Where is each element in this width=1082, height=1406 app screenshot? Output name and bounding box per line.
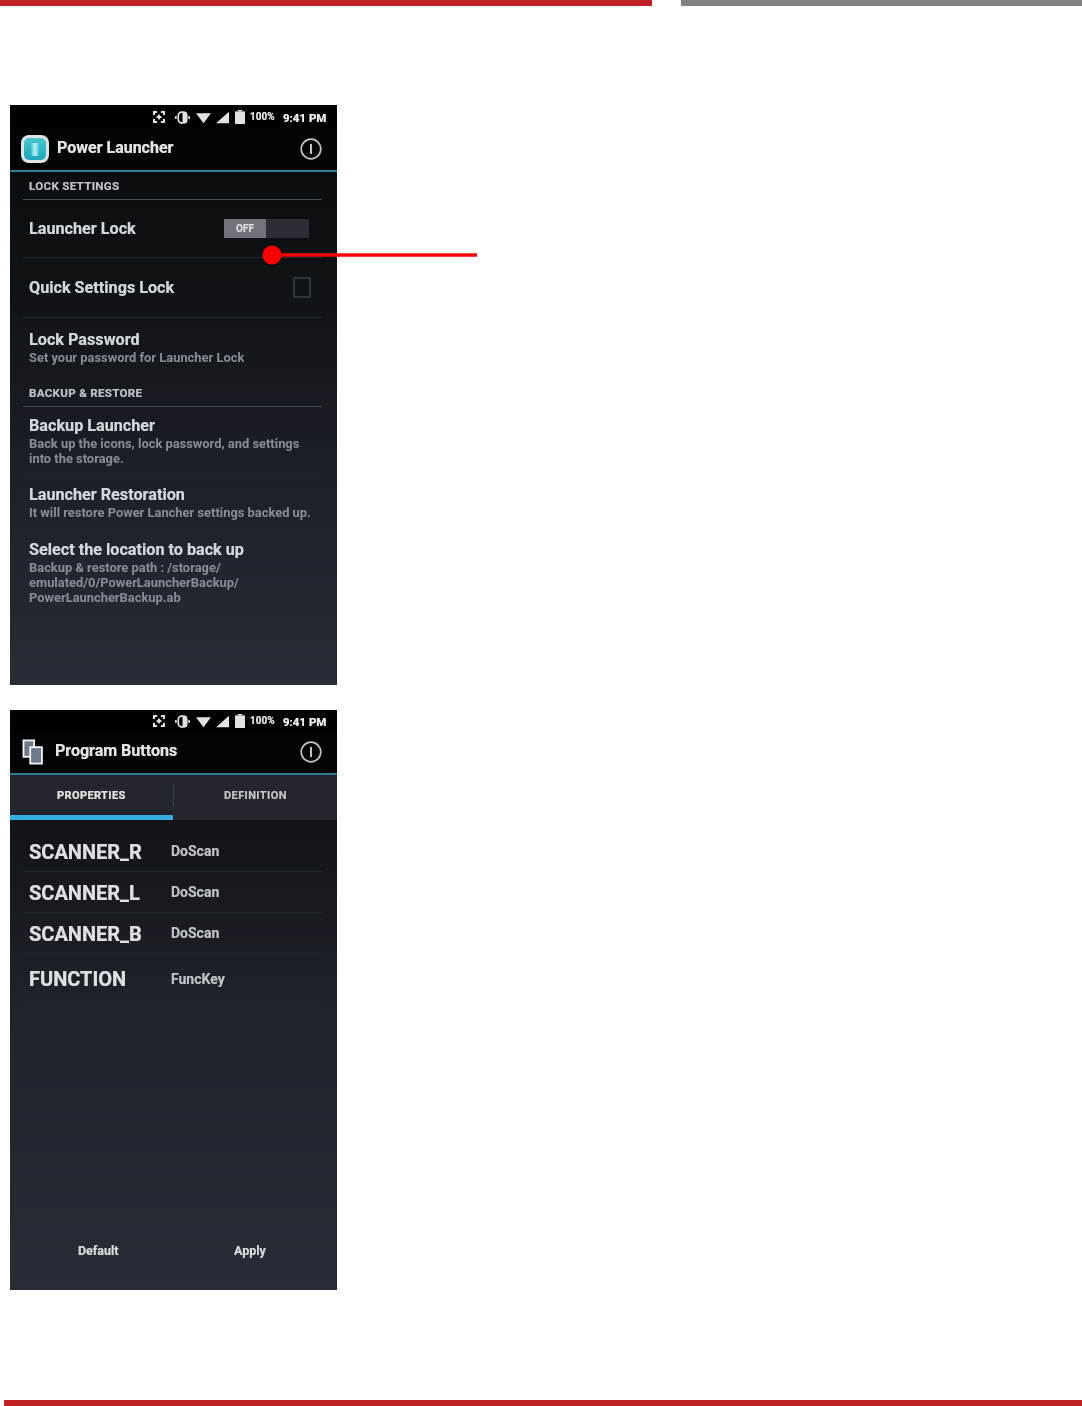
staticText: Back up the icons, lock password, and se… [29, 436, 300, 451]
button[interactable]: Info [300, 741, 322, 763]
button[interactable]: Backup Launcher [10, 407, 337, 473]
staticText: Quick Settings Lock [29, 278, 175, 297]
staticText: 100% [250, 715, 275, 727]
button[interactable]: DEFINITION [173, 775, 337, 815]
button[interactable]: OFF [224, 219, 309, 238]
staticText: into the storage. [29, 451, 124, 466]
button[interactable]: Power Launcher [10, 128, 337, 170]
staticText: DoScan [171, 843, 220, 859]
staticText: Set your password for Launcher Lock [29, 350, 245, 365]
staticText: emulated/0/PowerLauncherBackup/ [29, 575, 239, 590]
staticText: DEFINITION [224, 789, 287, 802]
staticText: DoScan [171, 925, 220, 941]
staticText: 9:41 PM [283, 111, 327, 124]
staticText: LOCK SETTINGS [29, 179, 120, 193]
staticText: SCANNER_R [29, 840, 142, 863]
staticText: Program Buttons [55, 741, 178, 760]
staticText: Backup Launcher [29, 416, 155, 435]
button[interactable]: FUNCTION [10, 954, 337, 1003]
staticText: It will restore Power Lancher settings b… [29, 505, 311, 520]
button[interactable]: Apply [173, 1210, 337, 1290]
staticText: SCANNER_L [29, 881, 140, 904]
staticText: Power Launcher [57, 138, 174, 157]
button[interactable]: SCANNER_L [10, 872, 337, 912]
staticText: DoScan [171, 884, 220, 900]
staticText: Launcher Restoration [29, 485, 185, 504]
staticText: FUNCTION [29, 967, 127, 990]
staticText: OFF [236, 223, 254, 235]
button[interactable]: Default [10, 1210, 173, 1290]
button[interactable]: Launcher Restoration [10, 474, 337, 532]
staticText: Backup & restore path : /storage/ [29, 560, 221, 575]
staticText: BACKUP & RESTORE [29, 386, 143, 400]
staticText: PROPERTIES [57, 789, 126, 802]
button[interactable]: Launcher Lock [10, 200, 337, 257]
button[interactable]: Program Buttons [10, 731, 337, 773]
button[interactable]: Info [300, 138, 322, 160]
button[interactable]: Lock Password [10, 318, 337, 379]
staticText: 100% [250, 111, 275, 123]
button[interactable]: PROPERTIES [10, 775, 173, 815]
button[interactable]: Quick Settings Lock [10, 258, 337, 317]
staticText: 9:41 PM [283, 715, 327, 728]
button[interactable]: Quick Settings Lock checkbox [294, 278, 310, 297]
staticText: PowerLauncherBackup.ab [29, 590, 181, 605]
staticText: Select the location to back up [29, 540, 244, 559]
staticText: FuncKey [171, 971, 225, 987]
button[interactable]: SCANNER_B [10, 913, 337, 953]
button[interactable]: SCANNER_R [10, 831, 337, 871]
button[interactable]: Select the location to back up [10, 533, 337, 613]
staticText: Lock Password [29, 330, 140, 349]
staticText: SCANNER_B [29, 922, 142, 945]
staticText: Apply [234, 1243, 266, 1258]
staticText: Default [78, 1243, 119, 1258]
staticText: Launcher Lock [29, 219, 136, 238]
